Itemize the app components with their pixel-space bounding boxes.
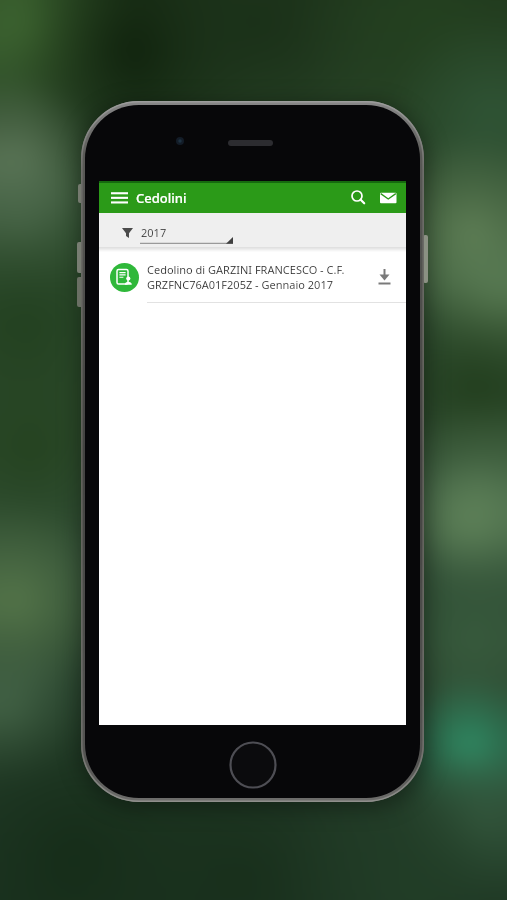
button[interactable]: Cedolino di GARZINI FRANCESCO - C.F. [99, 252, 406, 302]
button[interactable]: 2017 [99, 213, 406, 247]
button[interactable] [111, 192, 128, 204]
staticText: Cedolino di GARZINI FRANCESCO - C.F. [147, 262, 345, 277]
staticText: 2017 [141, 225, 167, 240]
staticText: GRZFNC76A01F205Z - Gennaio 2017 [147, 277, 333, 292]
button[interactable] [347, 187, 369, 209]
staticText: Cedolini [136, 189, 187, 207]
button[interactable] [369, 262, 399, 292]
button[interactable] [380, 192, 397, 204]
